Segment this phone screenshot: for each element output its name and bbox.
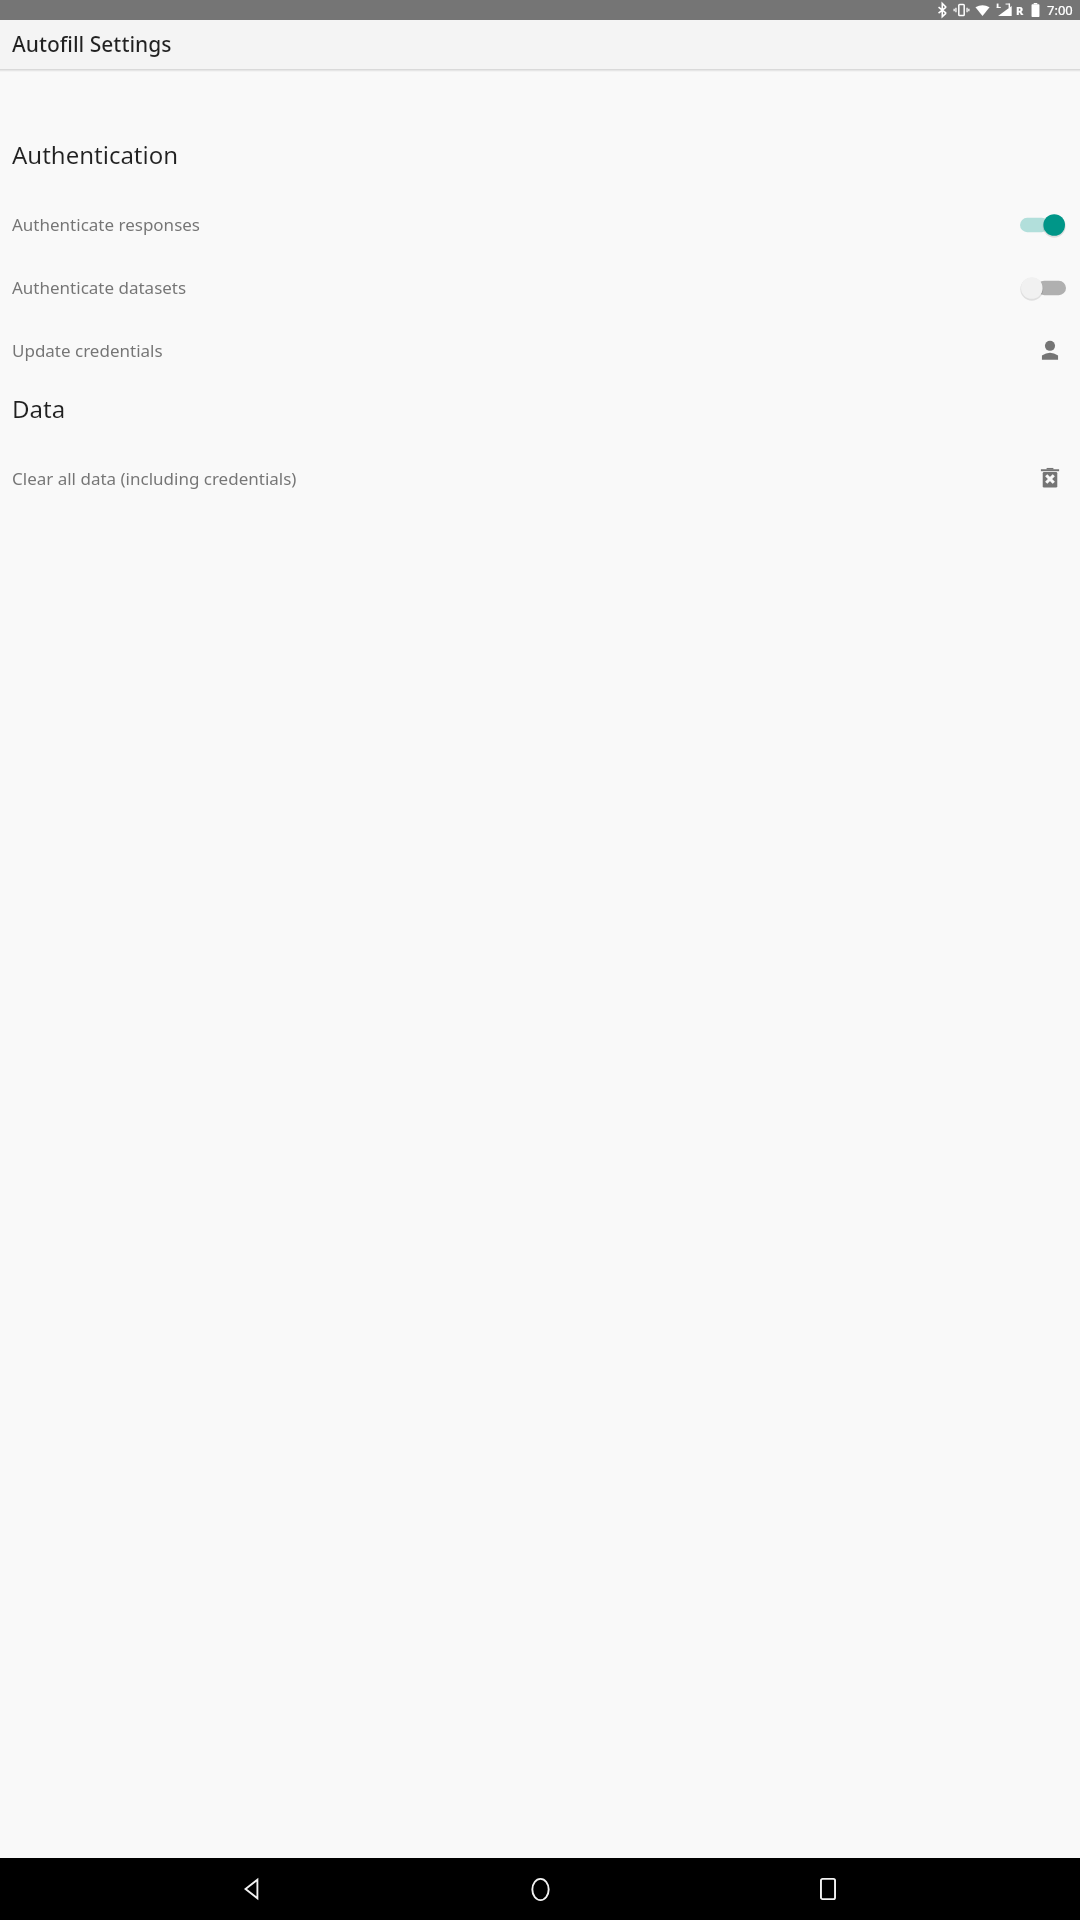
staticText: Clear all data (including credentials) [12, 467, 1037, 490]
staticText: Authentication [12, 138, 179, 171]
button[interactable]: Recent apps [793, 1858, 863, 1920]
button[interactable]: Clear all data (including credentials) [0, 447, 1080, 510]
button[interactable]: Update credentials [0, 319, 1080, 382]
staticText: Authenticate responses [12, 213, 1020, 236]
button[interactable]: Back [218, 1858, 288, 1920]
staticText: R [1016, 3, 1024, 18]
button[interactable]: Home [505, 1858, 575, 1920]
other: Clear all data [1037, 466, 1063, 492]
staticText: 7:00 [1047, 1, 1073, 19]
staticText: Authenticate datasets [12, 276, 1020, 299]
button[interactable]: Authenticate datasets [0, 256, 1080, 319]
button[interactable]: Authenticate responses [0, 193, 1080, 256]
staticText: Update credentials [12, 339, 1037, 362]
staticText: Autofill Settings [12, 30, 172, 59]
other: Update credentials [1037, 338, 1063, 364]
staticText: Data [12, 392, 66, 425]
